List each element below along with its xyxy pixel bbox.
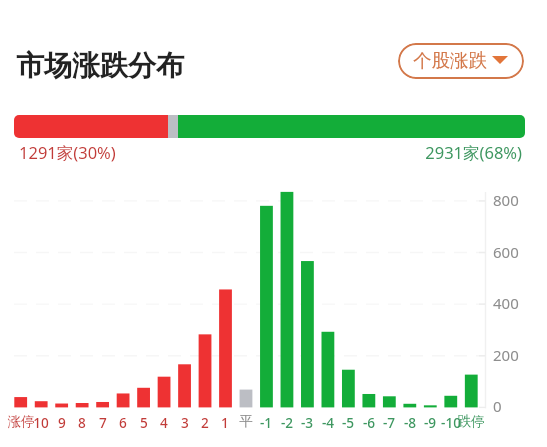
staticText: 平 — [226, 413, 266, 430]
staticText: 200 — [493, 345, 519, 365]
staticText: 6 — [103, 413, 143, 432]
staticText: 1291家(30%) — [19, 141, 116, 164]
staticText: -1 — [246, 413, 286, 432]
staticText: -10 — [431, 413, 471, 432]
staticText: -8 — [390, 413, 430, 432]
staticText: 7 — [83, 413, 123, 432]
staticText: -4 — [308, 413, 348, 432]
staticText: 4 — [144, 413, 184, 432]
staticText: 5 — [124, 413, 164, 432]
staticText: 0 — [493, 396, 502, 416]
staticText: 1 — [205, 413, 245, 432]
staticText: -2 — [267, 413, 307, 432]
staticText: 跌停 — [451, 413, 491, 430]
staticText: -5 — [328, 413, 368, 432]
button[interactable]: 个股涨跌 — [398, 43, 524, 79]
staticText: -6 — [349, 413, 389, 432]
staticText: 3 — [165, 413, 205, 432]
staticText: 2931家(68%) — [422, 141, 522, 164]
staticText: 800 — [493, 190, 519, 210]
staticText: 市场涨跌分布 — [16, 48, 184, 83]
staticText: -3 — [287, 413, 327, 432]
staticText: -9 — [410, 413, 450, 432]
staticText: 600 — [493, 242, 519, 262]
staticText: 8 — [62, 413, 102, 432]
staticText: 400 — [493, 293, 519, 313]
staticText: -7 — [369, 413, 409, 432]
staticText: 2 — [185, 413, 225, 432]
staticText: 9 — [42, 413, 82, 432]
staticText: 涨停 — [1, 413, 41, 430]
staticText: 个股涨跌 — [413, 49, 487, 72]
staticText: 10 — [21, 413, 61, 432]
